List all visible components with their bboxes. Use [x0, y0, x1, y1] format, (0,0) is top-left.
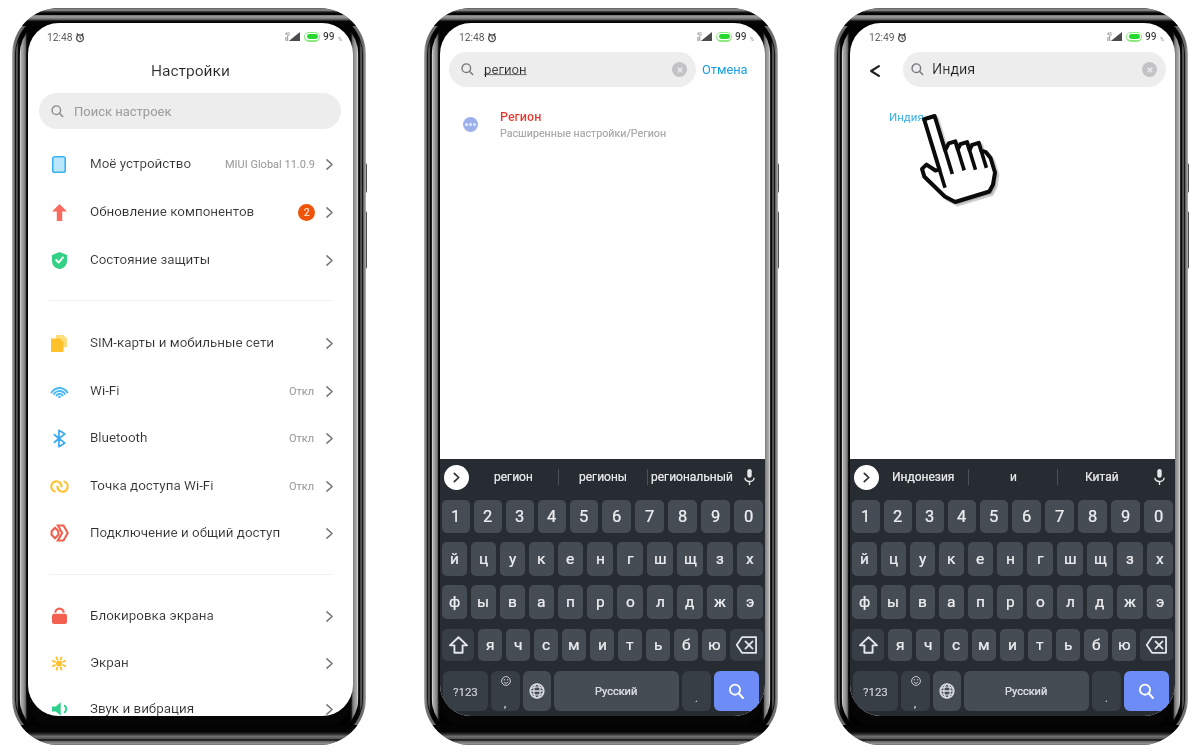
- button[interactable]: 0: [1144, 500, 1173, 533]
- button[interactable]: Clear text: [672, 62, 687, 77]
- button[interactable]: ш: [647, 542, 673, 576]
- button[interactable]: Backspace: [1140, 629, 1173, 661]
- button[interactable]: Индонезия: [879, 459, 968, 495]
- button[interactable]: Подключение и общий доступ: [28, 509, 353, 557]
- button[interactable]: э: [737, 585, 763, 619]
- button[interactable]: региональный: [648, 459, 736, 495]
- button[interactable]: з: [1117, 542, 1143, 576]
- button[interactable]: ?123: [443, 671, 488, 711]
- button[interactable]: .: [682, 671, 711, 711]
- button[interactable]: к: [939, 542, 964, 576]
- button[interactable]: 9: [1111, 500, 1140, 533]
- button[interactable]: Wi-Fi: [28, 367, 353, 415]
- button[interactable]: 8: [1078, 500, 1107, 533]
- button[interactable]: л: [1057, 585, 1083, 619]
- button[interactable]: 4: [538, 500, 566, 533]
- button[interactable]: р: [587, 585, 613, 619]
- button[interactable]: ж: [1117, 585, 1143, 619]
- button[interactable]: а: [939, 585, 964, 619]
- button[interactable]: п: [558, 585, 583, 619]
- button[interactable]: д: [1087, 585, 1113, 619]
- button[interactable]: 2: [884, 500, 912, 533]
- button[interactable]: Точка доступа Wi-Fi: [28, 462, 353, 510]
- button[interactable]: г: [617, 542, 643, 576]
- button[interactable]: я: [478, 629, 502, 661]
- button[interactable]: т: [618, 629, 642, 661]
- button[interactable]: у: [500, 542, 525, 576]
- button[interactable]: Search: [1124, 671, 1169, 711]
- button[interactable]: х: [737, 542, 763, 576]
- button[interactable]: й: [852, 542, 877, 576]
- button[interactable]: 7: [635, 500, 664, 533]
- button[interactable]: о: [1027, 585, 1053, 619]
- button[interactable]: ф: [852, 585, 877, 619]
- button[interactable]: б: [1084, 629, 1108, 661]
- button[interactable]: 4: [948, 500, 976, 533]
- button[interactable]: Отмена: [698, 57, 752, 82]
- button[interactable]: е: [968, 542, 993, 576]
- button[interactable]: Shift: [852, 629, 884, 661]
- button[interactable]: р: [997, 585, 1023, 619]
- button[interactable]: 7: [1045, 500, 1074, 533]
- button[interactable]: ц: [471, 542, 496, 576]
- button[interactable]: ы: [471, 585, 496, 619]
- button[interactable]: 1: [442, 500, 470, 533]
- button[interactable]: б: [674, 629, 698, 661]
- button[interactable]: Change keyboard language: [933, 671, 961, 711]
- button[interactable]: Индия: [903, 52, 1166, 87]
- button[interactable]: я: [888, 629, 912, 661]
- button[interactable]: г: [1027, 542, 1053, 576]
- button[interactable]: х: [1147, 542, 1173, 576]
- button[interactable]: SIM-карты и мобильные сети: [28, 319, 353, 367]
- button[interactable]: регион: [449, 52, 696, 87]
- button[interactable]: ш: [1057, 542, 1083, 576]
- button[interactable]: щ: [1087, 542, 1113, 576]
- button[interactable]: 6: [1012, 500, 1041, 533]
- button[interactable]: 9: [701, 500, 730, 533]
- button[interactable]: регионы: [559, 459, 647, 495]
- button[interactable]: Регион: [440, 109, 765, 143]
- button[interactable]: щ: [677, 542, 703, 576]
- button[interactable]: е: [558, 542, 583, 576]
- button[interactable]: Индия: [889, 110, 924, 123]
- button[interactable]: л: [647, 585, 673, 619]
- button[interactable]: 0: [734, 500, 763, 533]
- button[interactable]: с: [534, 629, 558, 661]
- button[interactable]: м: [972, 629, 996, 661]
- button[interactable]: Search: [714, 671, 759, 711]
- button[interactable]: ж: [707, 585, 733, 619]
- button[interactable]: 5: [570, 500, 598, 533]
- button[interactable]: й: [442, 542, 467, 576]
- button[interactable]: 5: [980, 500, 1008, 533]
- button[interactable]: 3: [916, 500, 944, 533]
- button[interactable]: Change keyboard language: [523, 671, 551, 711]
- button[interactable]: Clear text: [1142, 62, 1157, 77]
- button[interactable]: ч: [916, 629, 940, 661]
- button[interactable]: Звук и вибрация: [28, 685, 353, 716]
- button[interactable]: Backspace: [730, 629, 763, 661]
- button[interactable]: с: [944, 629, 968, 661]
- button[interactable]: Обновление компонентов: [28, 188, 353, 236]
- button[interactable]: в: [910, 585, 935, 619]
- button[interactable]: Состояние защиты: [28, 236, 353, 284]
- button[interactable]: ь: [646, 629, 670, 661]
- button[interactable]: ь: [1056, 629, 1080, 661]
- button[interactable]: п: [968, 585, 993, 619]
- button[interactable]: 1: [852, 500, 880, 533]
- button[interactable]: ?123: [853, 671, 898, 711]
- button[interactable]: и: [590, 629, 614, 661]
- button[interactable]: ц: [881, 542, 906, 576]
- button[interactable]: Emoji: [901, 671, 930, 711]
- button[interactable]: регион: [469, 459, 558, 495]
- button[interactable]: о: [617, 585, 643, 619]
- button[interactable]: Китай: [1058, 459, 1146, 495]
- button[interactable]: и: [1000, 629, 1024, 661]
- button[interactable]: з: [707, 542, 733, 576]
- button[interactable]: н: [997, 542, 1023, 576]
- button[interactable]: к: [529, 542, 554, 576]
- button[interactable]: ю: [1112, 629, 1136, 661]
- button[interactable]: Моё устройство: [28, 140, 353, 188]
- button[interactable]: д: [677, 585, 703, 619]
- button[interactable]: Русский: [964, 671, 1089, 711]
- button[interactable]: и: [969, 459, 1057, 495]
